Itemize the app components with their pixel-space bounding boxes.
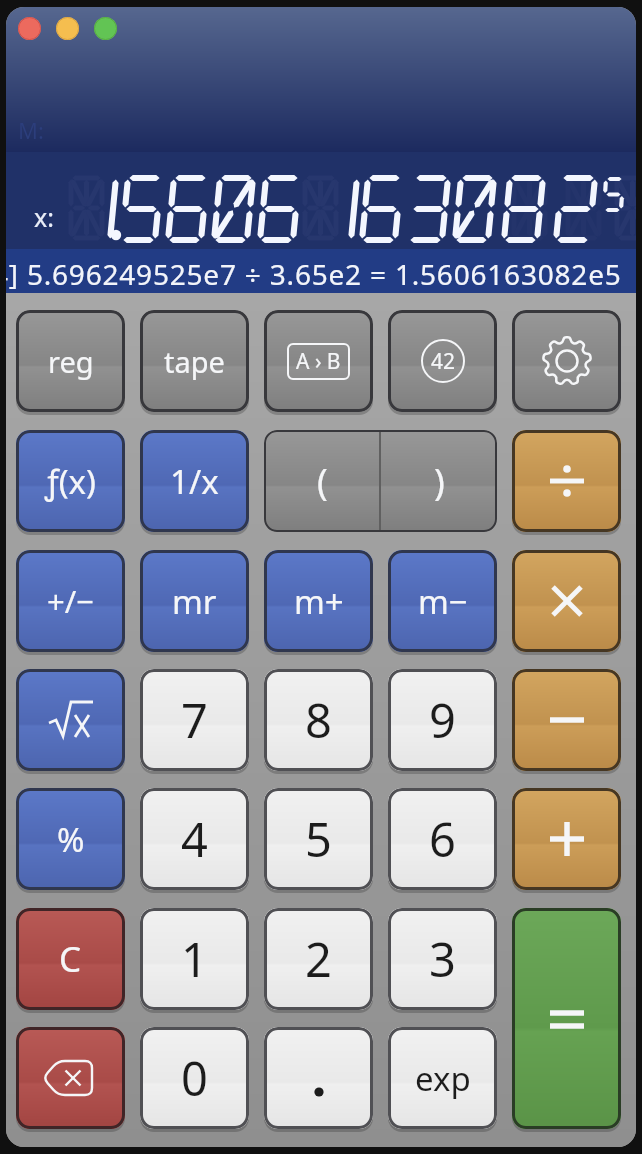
button[interactable]: 8: [264, 669, 373, 771]
button[interactable]: [16, 1027, 125, 1129]
staticText: 5: [305, 807, 332, 871]
staticText: A › B: [296, 347, 341, 376]
staticText: 42: [431, 347, 456, 376]
staticText: ): [434, 457, 445, 506]
staticText: 9: [429, 688, 456, 752]
button[interactable]: C: [16, 908, 125, 1010]
button[interactable]: 3: [388, 908, 497, 1010]
button[interactable]: [16, 669, 125, 771]
button[interactable]: 0: [140, 1027, 249, 1129]
staticText: exp: [415, 1056, 471, 1101]
staticText: 3: [429, 927, 456, 991]
button[interactable]: [512, 550, 621, 652]
button[interactable]: 7: [140, 669, 249, 771]
staticText: 4] 5.696249525e7 ÷ 3.65e2 = 1.5606163082…: [6, 255, 622, 293]
staticText: 7: [181, 688, 208, 752]
staticText: C: [59, 935, 82, 983]
staticText: M:: [18, 115, 44, 145]
staticText: 2: [305, 927, 332, 991]
staticText: 0: [181, 1046, 208, 1110]
staticText: 1: [181, 927, 208, 991]
button[interactable]: [512, 430, 621, 532]
button[interactable]: [56, 17, 79, 40]
staticText: ƒ(x): [45, 459, 96, 504]
button[interactable]: mr: [140, 550, 249, 652]
button[interactable]: [512, 788, 621, 890]
button[interactable]: ): [381, 430, 497, 532]
staticText: +/−: [47, 580, 94, 622]
staticText: x:: [34, 200, 54, 234]
staticText: m+: [294, 579, 344, 624]
button[interactable]: exp: [388, 1027, 497, 1129]
staticText: 1/x: [170, 459, 219, 504]
button[interactable]: reg: [16, 310, 125, 412]
button[interactable]: 1/x: [140, 430, 249, 532]
button[interactable]: 6: [388, 788, 497, 890]
button[interactable]: ƒ(x): [16, 430, 125, 532]
button[interactable]: (: [264, 430, 381, 532]
staticText: (: [317, 457, 328, 506]
button[interactable]: [512, 310, 621, 412]
button[interactable]: [512, 908, 621, 1129]
button[interactable]: m−: [388, 550, 497, 652]
button[interactable]: 5: [264, 788, 373, 890]
button[interactable]: [18, 17, 41, 40]
staticText: 6: [429, 807, 456, 871]
staticText: tape: [164, 342, 225, 381]
button[interactable]: 2: [264, 908, 373, 1010]
button[interactable]: %: [16, 788, 125, 890]
button[interactable]: [264, 1027, 373, 1129]
button[interactable]: [512, 669, 621, 771]
staticText: mr: [172, 579, 217, 624]
button[interactable]: 1: [140, 908, 249, 1010]
staticText: m−: [418, 579, 468, 624]
staticText: reg: [48, 342, 94, 381]
button[interactable]: 9: [388, 669, 497, 771]
button[interactable]: m+: [264, 550, 373, 652]
button[interactable]: 4: [140, 788, 249, 890]
staticText: %: [57, 817, 85, 862]
staticText: 4: [181, 807, 208, 871]
staticText: 8: [305, 688, 332, 752]
button[interactable]: [94, 17, 117, 40]
button[interactable]: tape: [140, 310, 249, 412]
button[interactable]: 42: [388, 310, 497, 412]
button[interactable]: A › B: [264, 310, 373, 412]
button[interactable]: +/−: [16, 550, 125, 652]
